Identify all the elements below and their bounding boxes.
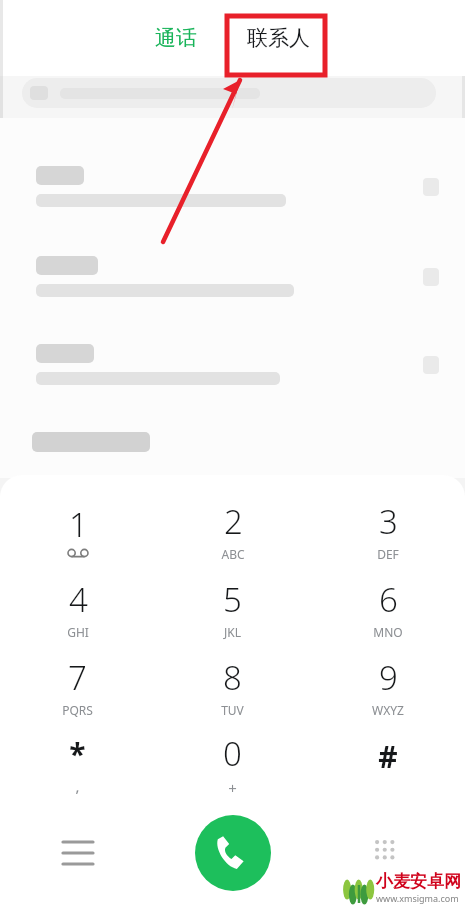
- button[interactable]: Hide keypad: [310, 809, 465, 897]
- staticText: #: [378, 736, 398, 777]
- button[interactable]: 6: [310, 569, 465, 647]
- staticText: 5: [223, 577, 242, 622]
- staticText: 9: [379, 655, 398, 700]
- button[interactable]: 3: [310, 491, 465, 569]
- button[interactable]: 2: [155, 491, 310, 569]
- staticText: ,: [75, 776, 80, 796]
- button[interactable]: 8: [155, 647, 310, 725]
- staticText: 7: [68, 655, 87, 700]
- staticText: www.xmsigma.com: [376, 892, 459, 904]
- button[interactable]: 5: [155, 569, 310, 647]
- staticText: 0: [223, 731, 242, 776]
- staticText: TUV: [221, 702, 244, 718]
- staticText: 通话: [155, 25, 197, 51]
- staticText: 2: [224, 499, 243, 544]
- staticText: DEF: [377, 546, 399, 562]
- staticText: 8: [223, 655, 242, 700]
- button[interactable]: 1: [0, 491, 155, 569]
- button[interactable]: Call: [195, 815, 271, 891]
- staticText: PQRS: [62, 702, 93, 718]
- staticText: 3: [379, 499, 398, 544]
- button[interactable]: #: [310, 725, 465, 803]
- staticText: WXYZ: [372, 702, 404, 718]
- button[interactable]: 9: [310, 647, 465, 725]
- staticText: 1: [69, 502, 88, 547]
- staticText: 6: [379, 577, 398, 622]
- button[interactable]: Menu: [0, 809, 155, 897]
- staticText: 联系人: [247, 25, 310, 51]
- staticText: ABC: [221, 546, 245, 562]
- button[interactable]: 7: [0, 647, 155, 725]
- staticText: 4: [69, 577, 88, 622]
- staticText: +: [228, 778, 237, 798]
- staticText: MNO: [373, 624, 403, 640]
- staticText: *: [69, 733, 86, 774]
- staticText: GHI: [67, 624, 89, 640]
- button[interactable]: *: [0, 725, 155, 803]
- button[interactable]: 通话: [145, 19, 207, 57]
- button[interactable]: 联系人: [237, 19, 320, 57]
- staticText: 小麦安卓网: [376, 871, 461, 892]
- staticText: JKL: [224, 624, 241, 640]
- button[interactable]: 4: [0, 569, 155, 647]
- button[interactable]: 0: [155, 725, 310, 803]
